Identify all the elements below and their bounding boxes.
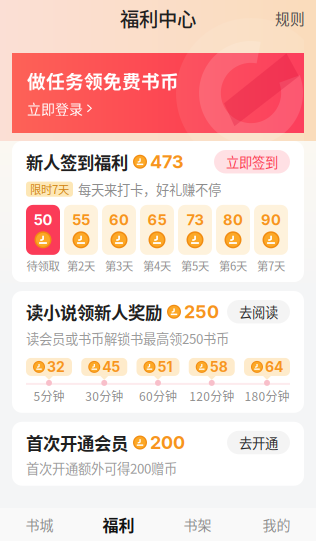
staticText: 第3天 <box>105 259 133 272</box>
staticText: 读会员或书币解锁书最高领250书币 <box>26 330 229 346</box>
staticText: 待领取 <box>26 259 59 272</box>
staticText: 45 <box>102 359 120 375</box>
button[interactable]: 55 <box>64 205 98 272</box>
button[interactable]: 50 <box>26 205 60 272</box>
staticText: 250 <box>184 301 219 322</box>
staticText: 读小说领新人奖励 <box>26 302 162 322</box>
staticText: 书城 <box>25 516 53 533</box>
staticText: 每天来打卡，好礼赚不停 <box>78 181 221 197</box>
button[interactable]: 80 <box>216 205 250 272</box>
staticText: 60 <box>109 211 129 228</box>
staticText: 立即登录 <box>27 100 83 116</box>
staticText: 书架 <box>183 516 211 533</box>
button[interactable]: 90 <box>254 205 288 272</box>
staticText: 200 <box>150 432 185 453</box>
staticText: 首次开通额外可得200赠币 <box>26 460 177 476</box>
staticText: 90 <box>261 211 281 228</box>
staticText: 64 <box>265 359 283 375</box>
staticText: 限时7天 <box>30 183 69 196</box>
button[interactable]: 书城 <box>0 508 79 541</box>
staticText: 第5天 <box>181 259 209 272</box>
button[interactable]: 立即签到 <box>214 150 290 173</box>
staticText: 首次开通会员 <box>26 432 128 453</box>
staticText: 65 <box>147 211 166 228</box>
staticText: 60分钟 <box>139 389 177 403</box>
staticText: 473 <box>150 151 184 172</box>
staticText: 福利 <box>102 515 134 534</box>
button[interactable]: 立即登录 <box>27 100 92 116</box>
staticText: 50 <box>33 211 52 228</box>
button[interactable]: 65 <box>140 205 174 272</box>
staticText: 福利中心 <box>120 7 196 29</box>
staticText: 第7天 <box>257 259 285 272</box>
staticText: 第6天 <box>219 259 247 272</box>
staticText: 120分钟 <box>189 389 234 403</box>
staticText: 180分钟 <box>244 389 289 403</box>
staticText: 55 <box>72 211 90 228</box>
button[interactable]: 规则 <box>264 1 316 34</box>
button[interactable]: 书架 <box>158 508 237 541</box>
staticText: 新人签到福利 <box>26 152 128 172</box>
button[interactable]: 去开通 <box>227 431 290 454</box>
button[interactable]: 我的 <box>237 508 316 541</box>
staticText: 第4天 <box>143 259 171 272</box>
button[interactable]: 福利 <box>79 508 158 541</box>
staticText: 立即签到 <box>226 154 278 169</box>
staticText: 做任务领免费书币 <box>27 70 179 91</box>
staticText: 32 <box>47 359 65 375</box>
staticText: 第2天 <box>67 259 95 272</box>
staticText: 5分钟 <box>33 389 64 403</box>
staticText: 去开通 <box>239 435 278 450</box>
staticText: 73 <box>186 211 203 228</box>
staticText: 我的 <box>262 516 290 533</box>
staticText: 58 <box>210 359 228 375</box>
button[interactable]: 73 <box>178 205 212 272</box>
staticText: 51 <box>157 359 172 375</box>
staticText: 80 <box>223 211 243 228</box>
button[interactable]: 60 <box>102 205 136 272</box>
button[interactable]: 去阅读 <box>227 300 290 323</box>
staticText: 去阅读 <box>239 304 278 319</box>
staticText: 30分钟 <box>85 389 123 403</box>
staticText: 规则 <box>275 9 305 26</box>
